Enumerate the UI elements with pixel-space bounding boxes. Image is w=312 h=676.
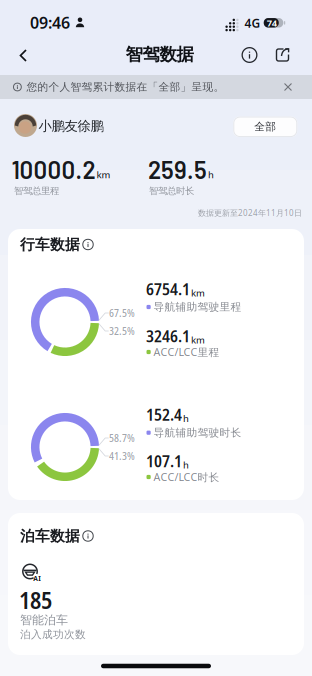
staticText: 智驾总里程 [14, 185, 59, 197]
staticText: 09:46 [30, 12, 70, 33]
staticText: 10000.2 [11, 155, 95, 184]
staticText: 泊车数据 [20, 527, 80, 545]
staticText: 智驾总时长 [149, 185, 194, 197]
button[interactable]: 说明 [78, 235, 98, 254]
staticText: 小鹏友徐鹏 [38, 118, 103, 134]
staticText: 67.5% [109, 306, 135, 320]
staticText: km [191, 334, 205, 346]
button[interactable]: 说明 [78, 526, 98, 546]
staticText: 智能泊车 [20, 613, 68, 627]
staticText: AI [33, 574, 41, 583]
staticText: 32.5% [109, 324, 135, 338]
staticText: km [191, 287, 205, 299]
button[interactable]: 信息 [235, 41, 263, 69]
staticText: 185 [19, 584, 52, 616]
button[interactable]: 关闭 [278, 77, 297, 96]
staticText: 全部 [254, 120, 276, 133]
staticText: km [96, 168, 110, 181]
staticText: 152.4 [146, 403, 182, 426]
staticText: ACC/LCC时长 [153, 470, 219, 484]
staticText: 6754.1 [146, 278, 190, 300]
staticText: ACC/LCC里程 [153, 345, 219, 359]
staticText: 数据更新至2024年11月10日 [198, 207, 302, 218]
staticText: h [208, 168, 214, 181]
staticText: 泊入成功次数 [20, 628, 86, 641]
staticText: 4G [244, 15, 260, 31]
button[interactable]: 分享 [269, 41, 296, 68]
staticText: 3246.1 [146, 325, 190, 347]
staticText: 导航辅助驾驶时长 [153, 426, 241, 439]
staticText: 导航辅助驾驶里程 [153, 300, 241, 313]
staticText: 您的个人智驾累计数据在「全部」呈现。 [26, 80, 224, 93]
staticText: 智驾数据 [125, 44, 193, 65]
staticText: 行车数据 [20, 235, 80, 253]
button[interactable]: 返回 [9, 40, 37, 71]
staticText: h [183, 459, 189, 471]
staticText: 74 [267, 17, 277, 29]
staticText: 259.5 [148, 155, 207, 184]
staticText: 58.7% [109, 431, 135, 445]
staticText: h [183, 412, 189, 424]
staticText: 107.1 [146, 450, 182, 472]
button[interactable]: 全部 [233, 116, 297, 137]
staticText: 41.3% [109, 449, 135, 463]
